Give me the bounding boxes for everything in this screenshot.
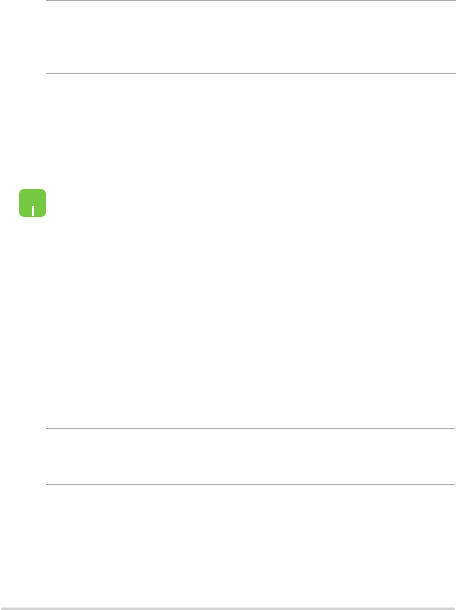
button[interactable]: List item 2 <box>0 74 456 428</box>
other: App icon <box>19 189 46 217</box>
